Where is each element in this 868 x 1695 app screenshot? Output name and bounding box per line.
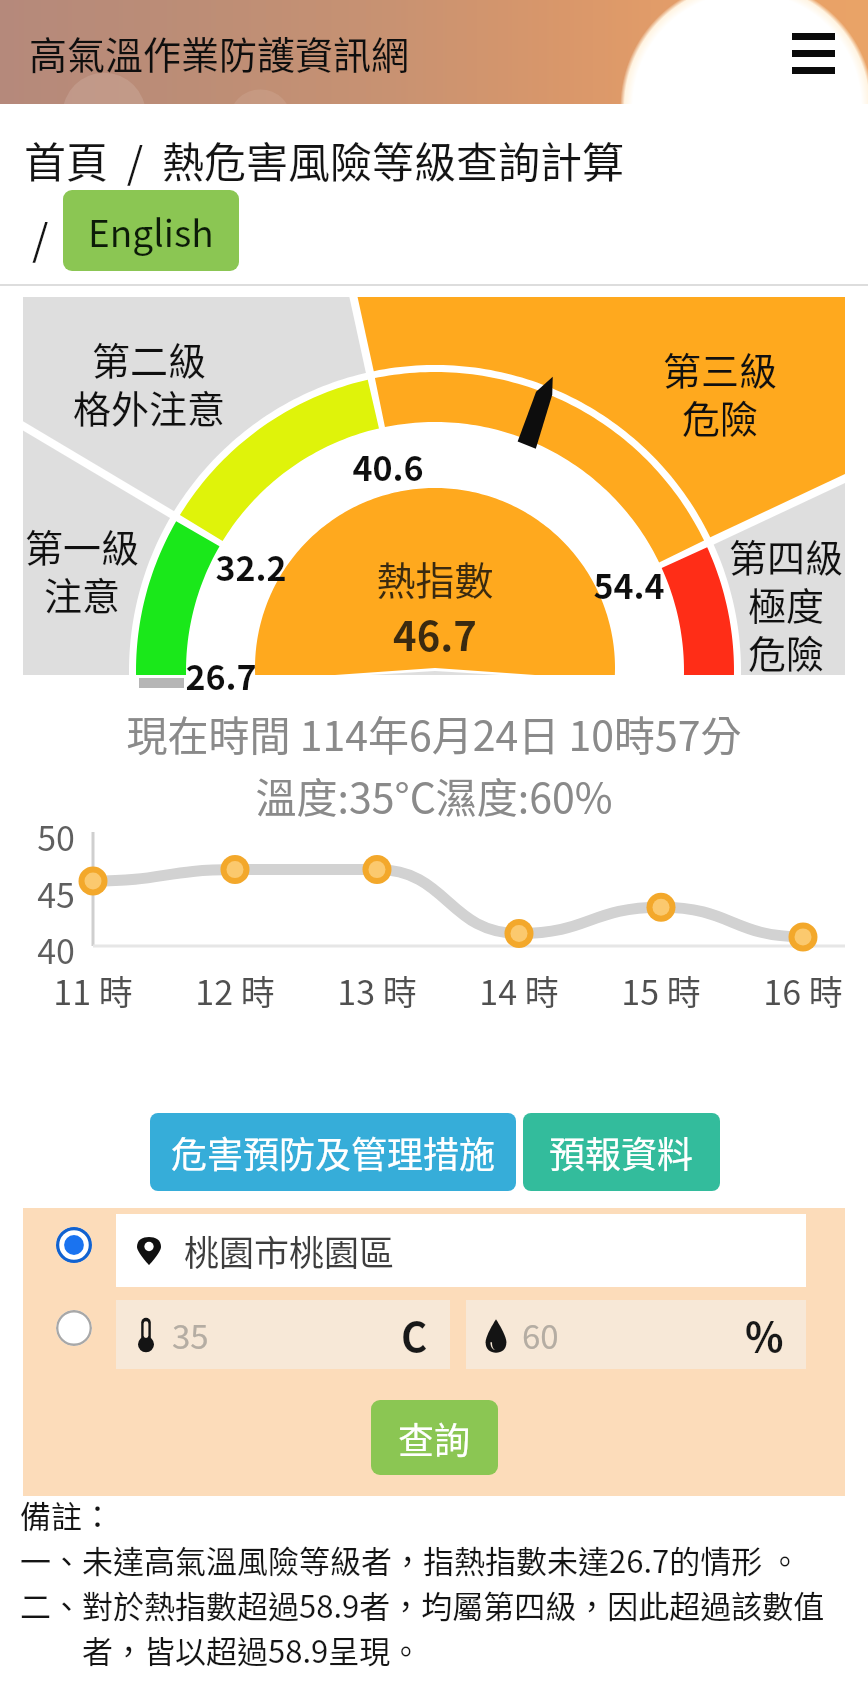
button[interactable]: 60 [466, 1300, 806, 1369]
staticText: 16 時 [703, 966, 868, 1015]
staticText: 11 時 [0, 966, 193, 1015]
button[interactable]: 35 [116, 1300, 450, 1369]
staticText: 者，皆以超過58.9呈現。 [20, 1627, 422, 1672]
button[interactable]: 桃園市桃園區 [116, 1214, 806, 1287]
staticText: 50 [0, 812, 116, 861]
staticText: 32.2 [151, 542, 351, 591]
staticText: 35 [172, 1311, 209, 1359]
staticText: 第二級 格外注意 [0, 331, 349, 434]
staticText: C [401, 1306, 428, 1364]
button[interactable]: 查詢 [371, 1400, 498, 1475]
staticText: 40 [0, 925, 116, 974]
staticText: 一、未達高氣溫風險等級者，指熱指數未達26.7的情形 。 [20, 1537, 801, 1582]
button[interactable]: 危害預防及管理措施 [150, 1113, 516, 1191]
staticText: 現在時間 114年6月24日 10時57分 [0, 703, 868, 762]
staticText: 首頁 / 熱危害風險等級查詢計算 [24, 129, 625, 190]
staticText: % [745, 1306, 784, 1364]
staticText: English [88, 204, 214, 258]
button[interactable]: 預報資料 [523, 1113, 720, 1191]
staticText: 二、對於熱指數超過58.9者，均屬第四級，因此超過該數值 [20, 1582, 825, 1627]
staticText: 桃園市桃園區 [184, 1225, 395, 1276]
button[interactable]: Selected option [56, 1227, 92, 1263]
staticText: 26.7 [121, 651, 321, 700]
staticText: 溫度:35°C濕度:60% [0, 765, 868, 824]
staticText: 15 時 [561, 966, 761, 1015]
staticText: 54.4 [529, 560, 729, 609]
staticText: 60 [522, 1311, 559, 1359]
button[interactable]: Option [56, 1310, 92, 1346]
staticText: 第一級 注意 [0, 518, 282, 621]
staticText: 查詢 [398, 1412, 471, 1464]
button[interactable]: Menu [792, 33, 835, 74]
staticText: 40.6 [288, 442, 488, 491]
staticText: 備註： [20, 1492, 113, 1537]
staticText: 46.7 [235, 605, 635, 663]
staticText: 第四級 極度 危險 [586, 528, 868, 679]
staticText: / [32, 206, 49, 267]
staticText: 危害預防及管理措施 [171, 1126, 496, 1178]
staticText: 預報資料 [549, 1126, 694, 1178]
staticText: 12 時 [135, 966, 335, 1015]
staticText: 高氣溫作業防護資訊網 [29, 25, 410, 80]
staticText: 45 [0, 869, 116, 918]
staticText: 第三級 危險 [520, 341, 868, 444]
staticText: 13 時 [277, 966, 477, 1015]
staticText: 14 時 [419, 966, 619, 1015]
staticText: 熱指數 [235, 550, 635, 606]
button[interactable]: English [63, 190, 239, 271]
